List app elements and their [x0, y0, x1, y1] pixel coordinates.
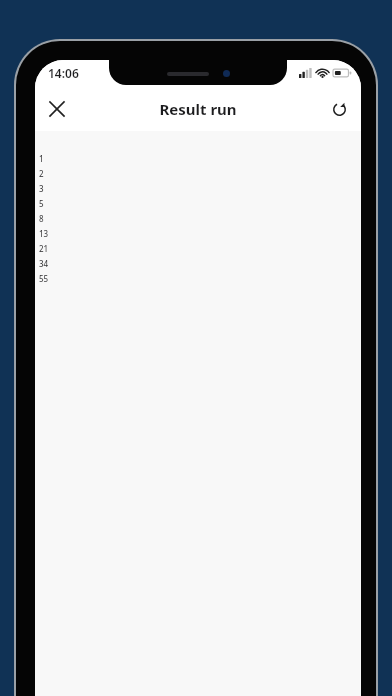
staticText: 3: [39, 183, 44, 194]
staticText: 1: [39, 153, 44, 164]
button[interactable]: Refresh: [321, 91, 357, 127]
button[interactable]: 8: [39, 211, 361, 226]
staticText: 13: [39, 228, 49, 239]
staticText: 5: [39, 198, 44, 209]
button[interactable]: 21: [39, 241, 361, 256]
staticText: 8: [39, 213, 44, 224]
button[interactable]: 1: [39, 151, 361, 166]
staticText: 21: [39, 243, 49, 254]
staticText: 14:06: [48, 65, 79, 81]
staticText: Result run: [159, 99, 237, 119]
button[interactable]: 3: [39, 181, 361, 196]
staticText: 2: [39, 168, 44, 179]
staticText: 55: [39, 273, 49, 284]
button[interactable]: Close: [39, 91, 75, 127]
staticText: 34: [39, 258, 49, 269]
button[interactable]: 5: [39, 196, 361, 211]
button[interactable]: 55: [39, 271, 361, 286]
button[interactable]: 34: [39, 256, 361, 271]
button[interactable]: 13: [39, 226, 361, 241]
button[interactable]: 2: [39, 166, 361, 181]
